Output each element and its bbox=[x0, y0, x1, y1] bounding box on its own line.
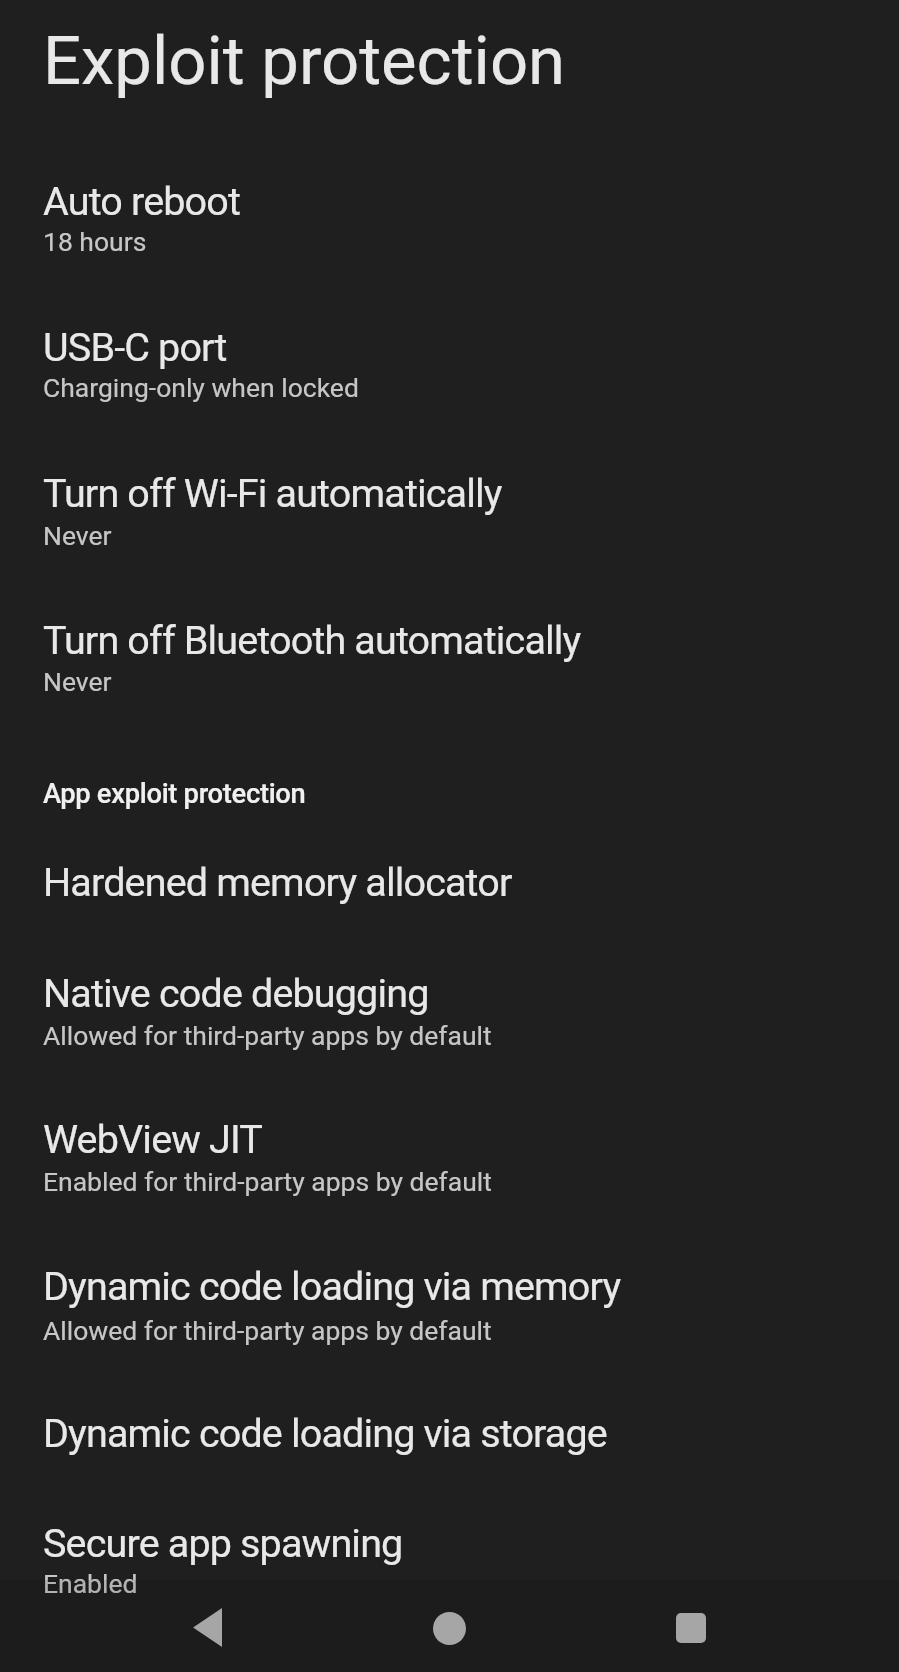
button[interactable]: Dynamic code loading via memory bbox=[0, 1233, 899, 1377]
staticText: Native code debugging bbox=[43, 970, 429, 1016]
staticText: Turn off Wi-Fi automatically bbox=[43, 470, 502, 516]
button[interactable]: Auto reboot bbox=[0, 148, 899, 290]
staticText: Never bbox=[43, 520, 112, 551]
staticText: Hardened memory allocator bbox=[43, 859, 512, 905]
staticText: Allowed for third-party apps by default bbox=[43, 1315, 492, 1346]
button[interactable]: Native code debugging bbox=[0, 940, 899, 1082]
button[interactable]: Hardened memory allocator bbox=[0, 829, 899, 920]
staticText: WebView JIT bbox=[43, 1116, 263, 1162]
staticText: Charging-only when locked bbox=[43, 372, 359, 403]
staticText: Never bbox=[43, 666, 112, 697]
button[interactable]: Secure app spawning bbox=[0, 1490, 899, 1640]
button[interactable]: Turn off Wi-Fi automatically bbox=[0, 440, 899, 583]
button[interactable]: Back bbox=[171, 1591, 243, 1663]
staticText: Exploit protection bbox=[43, 22, 566, 101]
staticText: Dynamic code loading via storage bbox=[43, 1410, 607, 1456]
staticText: Enabled bbox=[43, 1568, 138, 1599]
button[interactable]: Dynamic code loading via storage bbox=[0, 1380, 899, 1471]
staticText: Secure app spawning bbox=[43, 1520, 403, 1566]
button[interactable]: Home bbox=[413, 1592, 485, 1664]
staticText: Allowed for third-party apps by default bbox=[43, 1020, 492, 1051]
button[interactable]: Recent apps bbox=[655, 1592, 727, 1664]
staticText: Turn off Bluetooth automatically bbox=[43, 617, 581, 663]
staticText: 18 hours bbox=[43, 226, 147, 257]
staticText: Dynamic code loading via memory bbox=[43, 1263, 621, 1309]
staticText: Auto reboot bbox=[43, 178, 241, 224]
staticText: App exploit protection bbox=[43, 778, 306, 810]
button[interactable]: USB-C port bbox=[0, 294, 899, 436]
staticText: USB-C port bbox=[43, 324, 227, 370]
button[interactable]: WebView JIT bbox=[0, 1086, 899, 1230]
staticText: Enabled for third-party apps by default bbox=[43, 1166, 492, 1197]
button[interactable]: Turn off Bluetooth automatically bbox=[0, 587, 899, 730]
